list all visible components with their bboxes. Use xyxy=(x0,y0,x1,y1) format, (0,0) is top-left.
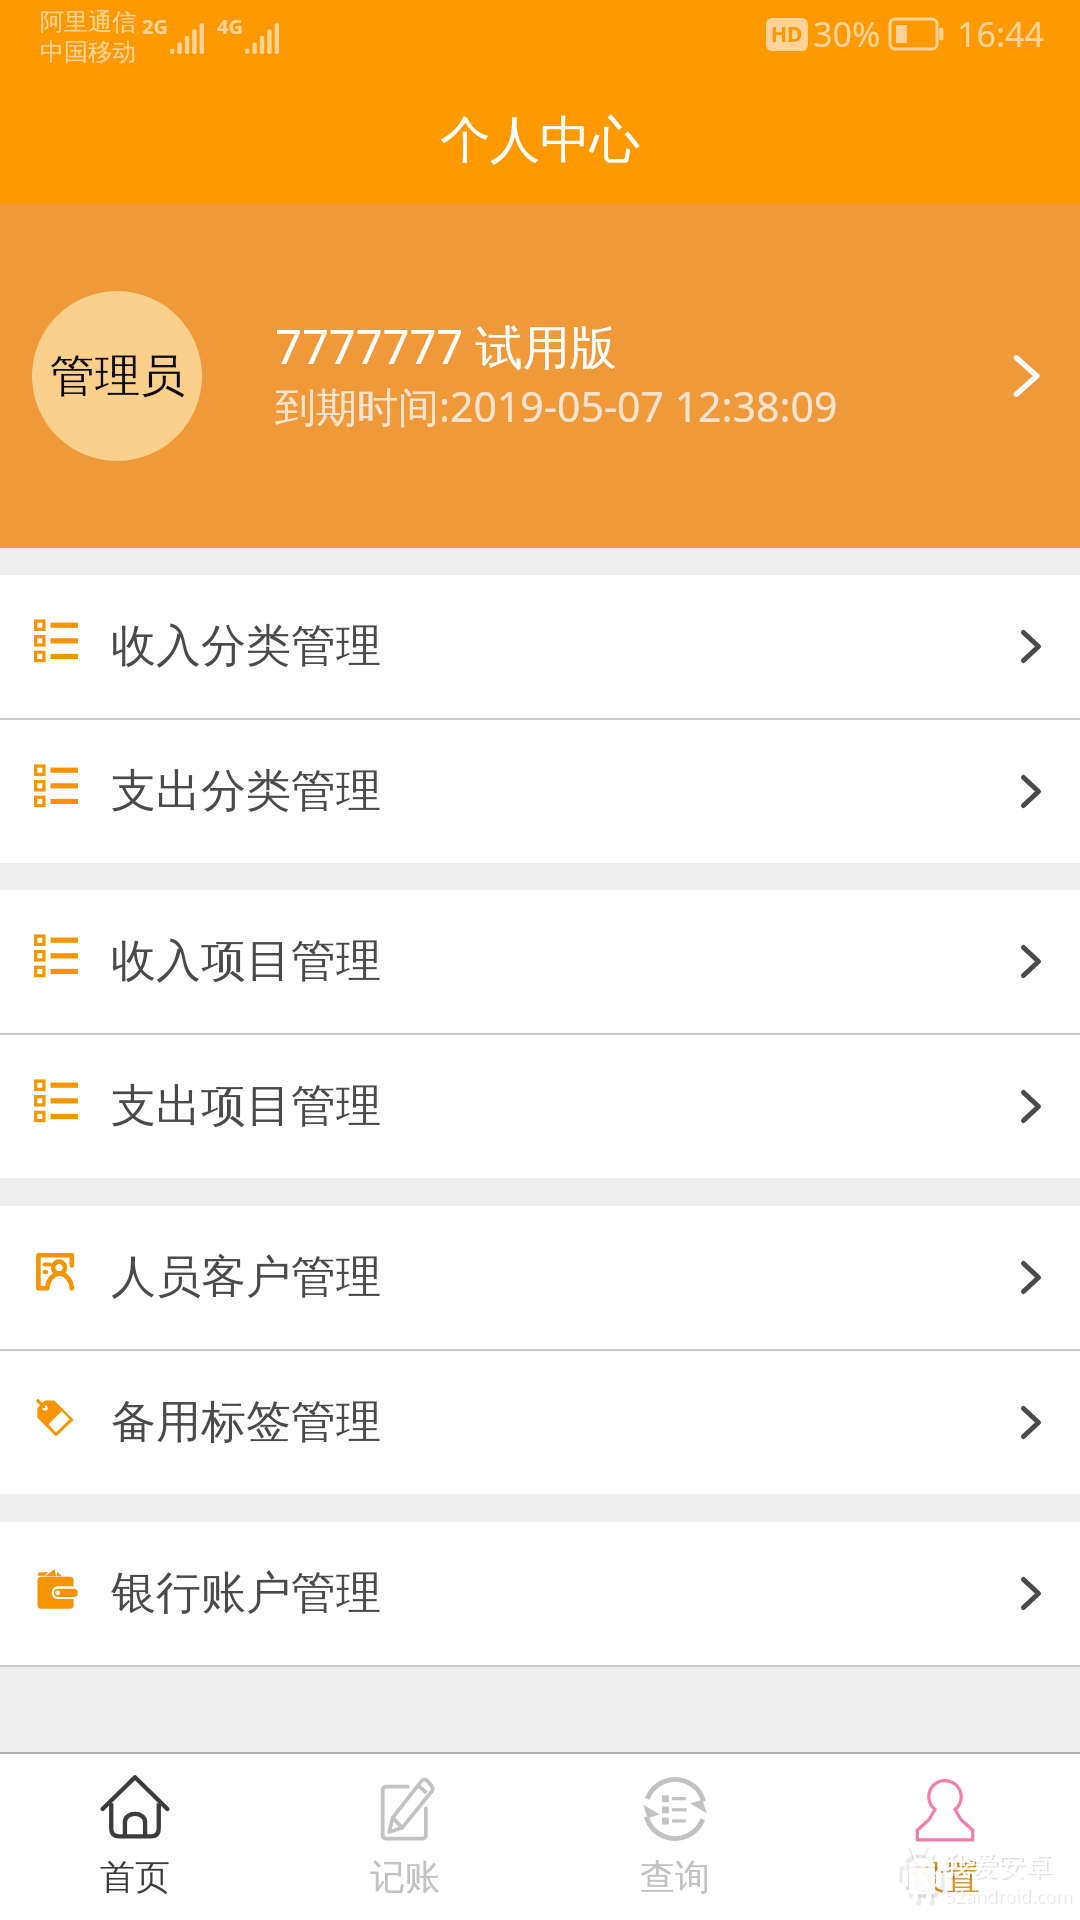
staticText: 收入项目管理 xyxy=(111,933,381,990)
staticText: HD xyxy=(771,20,803,49)
staticText: 记账 xyxy=(370,1855,440,1899)
staticText: 4G xyxy=(217,13,243,40)
button[interactable]: 查询 xyxy=(540,1754,810,1920)
staticText: 30% xyxy=(813,11,881,57)
staticText: 52android.com xyxy=(946,1885,1074,1910)
staticText: 银行账户管理 xyxy=(111,1565,381,1622)
staticText: 人员客户管理 xyxy=(111,1249,381,1306)
button[interactable]: 收入分类管理 xyxy=(0,575,1080,718)
staticText: 我爱安卓 xyxy=(944,1849,1052,1883)
staticText: 我爱安卓 xyxy=(946,1851,1054,1885)
staticText: 7777777 试用版 xyxy=(275,314,617,378)
staticText: 管理员 xyxy=(50,348,185,405)
button[interactable]: 人员客户管理 xyxy=(0,1206,1080,1349)
staticText: 支出项目管理 xyxy=(111,1078,381,1135)
button[interactable]: 收入项目管理 xyxy=(0,890,1080,1033)
staticText: 到期时间:2019-05-07 12:38:09 xyxy=(275,378,838,434)
staticText: 支出分类管理 xyxy=(111,763,381,820)
button[interactable]: 首页 xyxy=(0,1754,270,1920)
staticText: 备用标签管理 xyxy=(111,1394,381,1451)
staticText: 52android.com xyxy=(944,1883,1072,1908)
staticText: 阿里通信 xyxy=(40,7,136,37)
button[interactable]: 管理员 xyxy=(0,204,1080,548)
staticText: 设置 xyxy=(910,1855,980,1899)
staticText: 首页 xyxy=(100,1855,170,1899)
other: 账户详情 xyxy=(1008,350,1046,402)
staticText: 收入分类管理 xyxy=(111,618,381,675)
button[interactable]: 备用标签管理 xyxy=(0,1351,1080,1494)
button[interactable]: 记账 xyxy=(270,1754,540,1920)
staticText: 个人中心 xyxy=(440,109,640,172)
button[interactable]: 支出项目管理 xyxy=(0,1035,1080,1178)
staticText: 查询 xyxy=(640,1855,710,1899)
button[interactable]: 支出分类管理 xyxy=(0,720,1080,863)
button[interactable]: 银行账户管理 xyxy=(0,1522,1080,1665)
button[interactable]: 设置 xyxy=(810,1754,1080,1920)
staticText: 16:44 xyxy=(957,11,1044,57)
staticText: 2G xyxy=(142,13,168,40)
staticText: 中国移动 xyxy=(40,37,136,67)
